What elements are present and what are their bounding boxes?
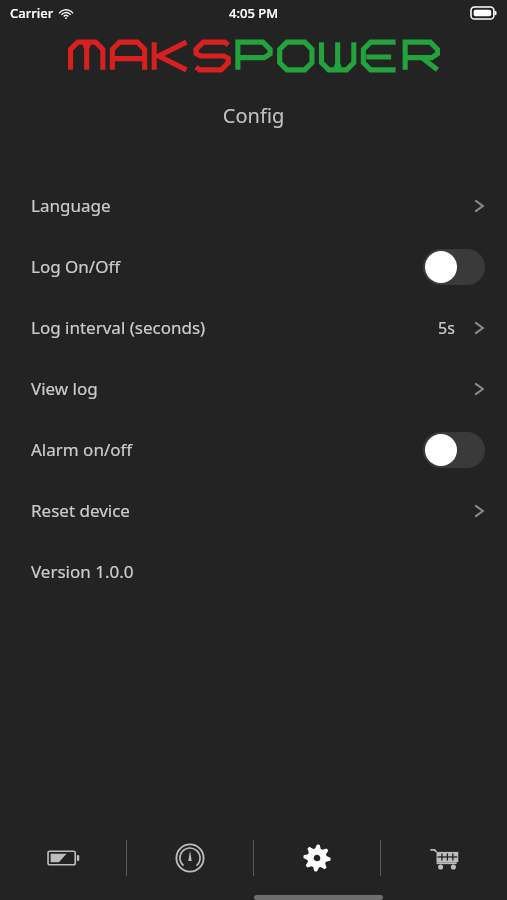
button[interactable]: Settings: [254, 830, 380, 886]
button[interactable]: Toggle Alarm on/off: [423, 432, 485, 468]
staticText: Log interval (seconds): [31, 316, 206, 339]
staticText: 5s: [438, 317, 455, 339]
staticText: Config: [0, 102, 507, 129]
staticText: View log: [31, 377, 98, 400]
button[interactable]: Log interval (seconds): [0, 297, 507, 358]
button[interactable]: Reset device: [0, 480, 507, 541]
staticText: 4:05 PM: [229, 4, 279, 22]
button[interactable]: View log: [0, 358, 507, 419]
button[interactable]: Language: [0, 175, 507, 236]
staticText: Reset device: [31, 499, 130, 522]
button[interactable]: Toggle Log On/Off: [423, 249, 485, 285]
button[interactable]: Version 1.0.0: [0, 541, 507, 602]
button[interactable]: Log On/Off: [0, 236, 507, 297]
button[interactable]: Battery: [0, 830, 126, 886]
button[interactable]: Gauge: [127, 830, 253, 886]
staticText: Alarm on/off: [31, 438, 133, 461]
button[interactable]: Alarm on/off: [0, 419, 507, 480]
staticText: Language: [31, 194, 111, 217]
button[interactable]: Shop: [381, 830, 507, 886]
staticText: Version 1.0.0: [31, 560, 134, 583]
staticText: Carrier: [10, 4, 54, 22]
staticText: Log On/Off: [31, 255, 121, 278]
